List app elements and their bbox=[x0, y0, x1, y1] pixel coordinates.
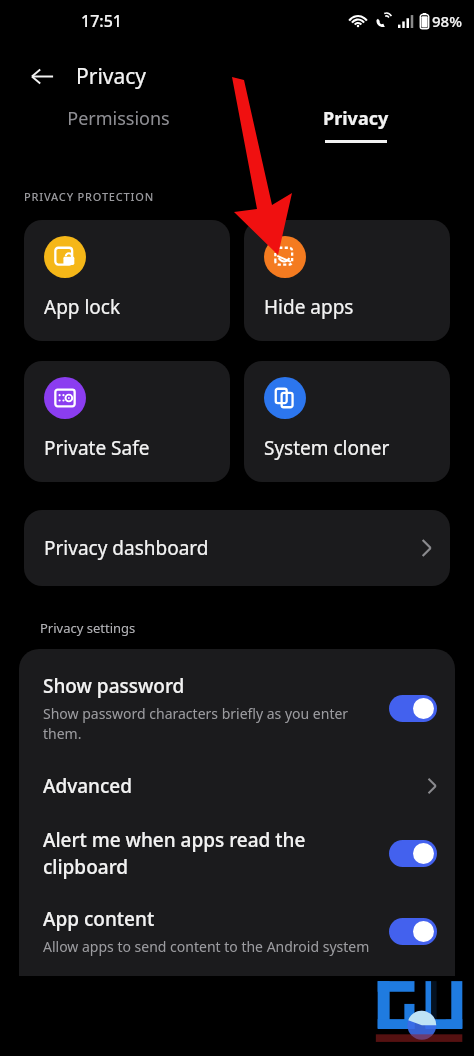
button[interactable]: Privacy bbox=[237, 106, 474, 143]
staticText: Alert me when apps read the clipboard bbox=[43, 827, 377, 880]
staticText: Privacy settings bbox=[40, 619, 136, 637]
button[interactable]: Hide apps bbox=[244, 220, 450, 341]
staticText: 98% bbox=[432, 11, 462, 31]
staticText: 17:51 bbox=[81, 10, 122, 32]
staticText: App content bbox=[43, 906, 155, 932]
staticText: Advanced bbox=[43, 773, 427, 799]
staticText: Show password characters briefly as you … bbox=[43, 704, 377, 743]
button[interactable]: App lock bbox=[24, 220, 230, 341]
button[interactable]: Toggle on bbox=[389, 695, 437, 722]
staticText: System cloner bbox=[264, 435, 390, 461]
staticText: Hide apps bbox=[264, 294, 354, 320]
staticText: Privacy bbox=[323, 106, 389, 131]
button[interactable]: App content bbox=[19, 906, 455, 956]
staticText: Private Safe bbox=[44, 435, 150, 461]
staticText: Show password bbox=[43, 673, 185, 699]
staticText: Privacy dashboard bbox=[44, 535, 209, 561]
button[interactable]: System cloner bbox=[244, 361, 450, 482]
button[interactable]: Alert me when apps read the clipboard bbox=[19, 827, 455, 880]
button[interactable]: Toggle on bbox=[389, 918, 437, 945]
staticText: Allow apps to send content to the Androi… bbox=[43, 937, 370, 956]
button[interactable]: Private Safe bbox=[24, 361, 230, 482]
button[interactable]: Permissions bbox=[0, 106, 237, 131]
button[interactable]: Advanced bbox=[19, 767, 455, 805]
button[interactable]: Back bbox=[20, 54, 64, 98]
button[interactable]: Toggle on bbox=[389, 840, 437, 867]
staticText: Privacy bbox=[76, 62, 147, 91]
staticText: App lock bbox=[44, 294, 121, 320]
staticText: Permissions bbox=[67, 106, 170, 131]
button[interactable]: Privacy dashboard bbox=[24, 510, 450, 586]
button[interactable]: Show password bbox=[19, 665, 455, 753]
staticText: PRIVACY PROTECTION bbox=[24, 189, 155, 204]
